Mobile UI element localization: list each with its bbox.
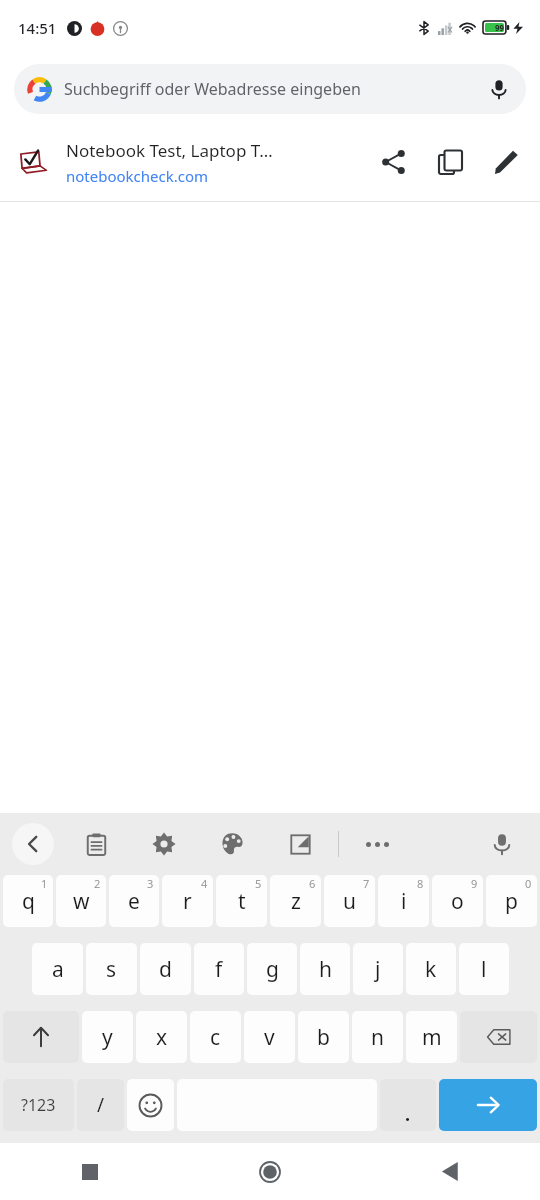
button[interactable]: o: [432, 875, 483, 927]
staticText: ?123: [21, 1094, 56, 1116]
button[interactable]: Emoji: [127, 1079, 174, 1131]
staticText: x: [156, 1023, 168, 1052]
staticText: z: [291, 887, 301, 916]
button[interactable]: a: [32, 943, 83, 995]
button[interactable]: /: [77, 1079, 124, 1131]
staticText: h: [319, 955, 332, 984]
button[interactable]: Back: [12, 823, 54, 865]
staticText: Suchbegriff oder Webadresse eingeben: [64, 78, 361, 100]
staticText: n: [371, 1023, 384, 1052]
button[interactable]: Recent apps: [0, 1143, 180, 1200]
staticText: 6: [309, 876, 316, 891]
button[interactable]: Suchbegriff oder Webadresse eingeben: [14, 64, 526, 114]
staticText: s: [106, 955, 117, 984]
staticText: Notebook Test, Laptop T…: [66, 139, 273, 162]
button[interactable]: v: [244, 1011, 295, 1063]
button[interactable]: r: [162, 875, 213, 927]
button[interactable]: .: [380, 1079, 436, 1131]
button[interactable]: k: [406, 943, 456, 995]
staticText: 9: [471, 876, 478, 891]
button[interactable]: More: [357, 824, 397, 864]
button[interactable]: Edit: [478, 134, 534, 190]
button[interactable]: y: [82, 1011, 133, 1063]
button[interactable]: e: [109, 875, 159, 927]
staticText: f: [215, 955, 223, 984]
staticText: /: [97, 1092, 105, 1118]
staticText: notebookcheck.com: [66, 166, 209, 186]
staticText: 5: [255, 876, 262, 891]
button[interactable]: z: [270, 875, 321, 927]
button[interactable]: q: [3, 875, 53, 927]
button[interactable]: Resize: [280, 824, 320, 864]
button[interactable]: Shift: [3, 1011, 79, 1063]
button[interactable]: c: [190, 1011, 241, 1063]
button[interactable]: Clipboard: [76, 824, 116, 864]
button[interactable]: p: [486, 875, 537, 927]
button[interactable]: w: [56, 875, 106, 927]
button[interactable]: j: [353, 943, 403, 995]
button[interactable]: Delete: [460, 1011, 537, 1063]
button[interactable]: h: [300, 943, 350, 995]
button[interactable]: Settings: [144, 824, 184, 864]
button[interactable]: d: [140, 943, 191, 995]
button[interactable]: i: [378, 875, 429, 927]
staticText: m: [422, 1023, 442, 1052]
staticText: c: [210, 1023, 221, 1052]
staticText: 8: [417, 876, 424, 891]
button[interactable]: Enter: [439, 1079, 537, 1131]
button[interactable]: f: [194, 943, 244, 995]
staticText: l: [481, 955, 487, 984]
staticText: o: [451, 887, 464, 916]
staticText: g: [266, 955, 279, 984]
staticText: k: [425, 955, 437, 984]
staticText: 0: [525, 876, 532, 891]
staticText: 1: [41, 876, 48, 891]
staticText: u: [343, 887, 356, 916]
staticText: 3: [147, 876, 154, 891]
button[interactable]: n: [352, 1011, 403, 1063]
button[interactable]: Home: [180, 1143, 360, 1200]
staticText: r: [183, 887, 192, 916]
staticText: i: [401, 887, 407, 916]
staticText: 7: [363, 876, 370, 891]
staticText: a: [52, 955, 64, 984]
button[interactable]: Back: [360, 1143, 540, 1200]
button[interactable]: g: [247, 943, 297, 995]
button[interactable]: Voice search: [486, 76, 512, 102]
button[interactable]: ?123: [3, 1079, 74, 1131]
button[interactable]: l: [459, 943, 509, 995]
button[interactable]: x: [136, 1011, 187, 1063]
button[interactable]: Notebook Test, Laptop T…: [0, 123, 540, 201]
staticText: e: [128, 887, 140, 916]
staticText: 99: [495, 22, 505, 33]
button[interactable]: b: [298, 1011, 349, 1063]
staticText: t: [238, 887, 246, 916]
staticText: .: [405, 1102, 411, 1127]
staticText: 14:51: [18, 18, 57, 38]
staticText: 2: [94, 876, 101, 891]
button[interactable]: Theme: [212, 824, 252, 864]
button[interactable]: m: [406, 1011, 457, 1063]
button[interactable]: t: [216, 875, 267, 927]
button[interactable]: s: [86, 943, 137, 995]
staticText: p: [505, 887, 518, 916]
staticText: 4: [201, 876, 208, 891]
staticText: y: [102, 1023, 113, 1052]
button[interactable]: Copy: [422, 134, 478, 190]
staticText: w: [73, 887, 90, 916]
staticText: j: [375, 955, 381, 984]
staticText: b: [317, 1023, 330, 1052]
button[interactable]: Voice input: [482, 824, 522, 864]
button[interactable]: u: [324, 875, 375, 927]
staticText: v: [264, 1023, 275, 1052]
button[interactable]: Share: [366, 134, 422, 190]
staticText: q: [22, 887, 35, 916]
staticText: d: [159, 955, 172, 984]
